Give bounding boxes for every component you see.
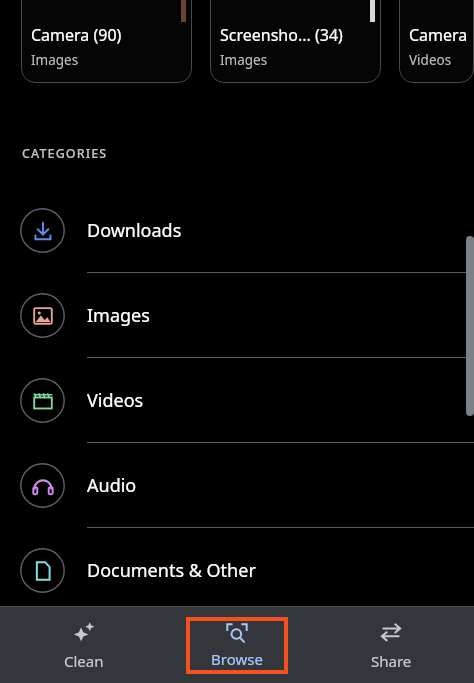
staticText: Documents & Other: [87, 558, 256, 583]
staticText: Videos: [409, 51, 452, 69]
staticText: Images: [31, 51, 79, 69]
button[interactable]: Screensho... (34): [210, 0, 381, 83]
staticText: Audio: [87, 473, 137, 498]
staticText: Images: [220, 51, 268, 69]
button[interactable]: Audio: [0, 443, 474, 528]
button[interactable]: Share: [321, 610, 461, 680]
button[interactable]: Clean: [14, 610, 154, 680]
button[interactable]: Camera: [399, 0, 474, 83]
staticText: Screensho... (34): [220, 24, 343, 46]
staticText: Share: [371, 651, 412, 671]
staticText: Browse: [211, 649, 263, 669]
staticText: Images: [87, 303, 150, 328]
button[interactable]: Browse: [190, 621, 284, 670]
button[interactable]: Documents & Other: [0, 528, 474, 612]
button[interactable]: Downloads: [0, 188, 474, 273]
staticText: Clean: [64, 651, 104, 671]
button[interactable]: Camera (90): [21, 0, 192, 83]
button[interactable]: Images: [0, 273, 474, 358]
staticText: Downloads: [87, 218, 182, 243]
button[interactable]: Videos: [0, 358, 474, 443]
staticText: CATEGORIES: [22, 145, 108, 162]
staticText: Videos: [87, 388, 144, 413]
staticText: Camera (90): [31, 24, 122, 46]
staticText: Camera: [409, 24, 468, 46]
